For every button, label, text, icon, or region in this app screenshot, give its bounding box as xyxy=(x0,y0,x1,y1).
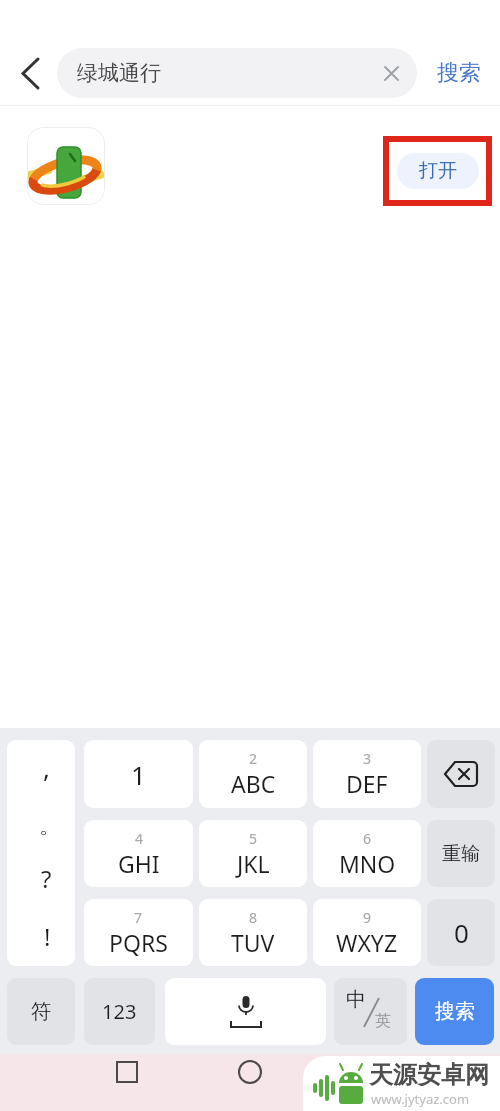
button[interactable] xyxy=(230,1052,270,1092)
staticText: 英 xyxy=(375,1011,391,1031)
staticText: www.jytyaz.com xyxy=(371,1090,470,1108)
staticText: GHI xyxy=(118,848,160,879)
staticText: 符 xyxy=(31,999,51,1024)
staticText: 0 xyxy=(454,915,469,950)
button[interactable]: 3 xyxy=(313,740,421,808)
staticText: 5 xyxy=(249,829,258,848)
button[interactable] xyxy=(27,127,105,205)
button[interactable]: 5 xyxy=(199,820,307,887)
button[interactable] xyxy=(427,740,495,808)
staticText: 1 xyxy=(131,757,146,792)
button[interactable] xyxy=(107,1052,147,1092)
button[interactable] xyxy=(165,978,326,1045)
staticText: 8 xyxy=(249,908,258,927)
staticText: MNO xyxy=(339,848,396,879)
staticText: 中 xyxy=(346,987,366,1012)
staticText: JKL xyxy=(237,848,270,879)
staticText: 6 xyxy=(363,829,372,848)
staticText: 9 xyxy=(363,908,372,927)
button[interactable]: 打开 xyxy=(397,153,479,189)
staticText: 重输 xyxy=(442,842,480,866)
button[interactable]: 中 xyxy=(334,978,407,1045)
staticText: DEF xyxy=(346,768,388,799)
button[interactable]: 8 xyxy=(199,899,307,966)
button[interactable]: 123 xyxy=(84,978,155,1045)
staticText: PQRS xyxy=(109,927,168,958)
staticText: 搜索 xyxy=(435,999,475,1024)
staticText: 3 xyxy=(363,749,372,768)
staticText: WXYZ xyxy=(336,927,398,958)
staticText: 123 xyxy=(102,998,137,1025)
staticText: ABC xyxy=(231,768,276,799)
button[interactable]: 重输 xyxy=(427,820,495,887)
staticText: 2 xyxy=(249,749,258,768)
button[interactable]: 2 xyxy=(199,740,307,808)
staticText: ! xyxy=(44,920,51,953)
button[interactable]: 4 xyxy=(84,820,193,887)
button[interactable]: 6 xyxy=(313,820,421,887)
staticText: , xyxy=(43,750,50,785)
staticText: ? xyxy=(41,862,52,895)
button[interactable] xyxy=(10,56,50,92)
button[interactable]: , xyxy=(7,740,75,966)
button[interactable]: 符 xyxy=(7,978,75,1045)
button[interactable]: 绿城通行 xyxy=(57,48,417,98)
button[interactable]: 0 xyxy=(427,899,495,966)
staticText: 绿城通行 xyxy=(77,60,161,86)
staticText: 。 xyxy=(39,812,61,840)
staticText: TUV xyxy=(231,927,275,958)
staticText: 天源安卓网 xyxy=(369,1060,489,1090)
button[interactable]: 7 xyxy=(84,899,193,966)
staticText: 搜索 xyxy=(437,59,481,87)
staticText: 4 xyxy=(135,829,144,848)
staticText: 打开 xyxy=(419,159,457,183)
button[interactable]: 搜索 xyxy=(428,55,490,91)
staticText: 7 xyxy=(134,908,143,927)
button[interactable]: 9 xyxy=(313,899,421,966)
button[interactable]: 1 xyxy=(84,740,193,808)
button[interactable]: 搜索 xyxy=(415,978,494,1045)
